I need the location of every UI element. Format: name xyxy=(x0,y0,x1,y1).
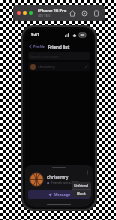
staticText: chrisemry xyxy=(47,174,69,180)
staticText: iOS 18.0 xyxy=(38,14,51,18)
button[interactable]: Unfriend xyxy=(72,182,91,189)
staticText: chrisemry xyxy=(38,64,55,69)
staticText: Search username xyxy=(30,54,60,59)
button[interactable]: chrisemry xyxy=(28,62,90,71)
other: Edit xyxy=(84,65,88,69)
button[interactable]: Settings xyxy=(80,9,89,18)
staticText: Friends since 2024 xyxy=(51,181,79,185)
button[interactable]: More options xyxy=(84,169,90,175)
staticText: Block xyxy=(77,191,86,196)
staticText: Friend list xyxy=(48,44,70,50)
button[interactable]: Minimise xyxy=(23,11,27,15)
staticText: Message xyxy=(54,192,71,197)
staticText: Profile xyxy=(33,44,46,49)
button[interactable]: Search username xyxy=(28,52,90,60)
staticText: 9:41 xyxy=(31,32,40,38)
staticText: Unfriend xyxy=(74,183,89,188)
staticText: iPhone 16 Pro xyxy=(38,8,67,14)
button[interactable]: Profile xyxy=(28,44,46,49)
button[interactable]: Close xyxy=(17,11,21,15)
button[interactable]: Message xyxy=(28,190,90,199)
button[interactable]: Zoom xyxy=(29,11,33,15)
button[interactable]: Block xyxy=(72,190,91,197)
button[interactable]: Rotate xyxy=(92,9,101,18)
button[interactable]: Home xyxy=(68,9,77,18)
